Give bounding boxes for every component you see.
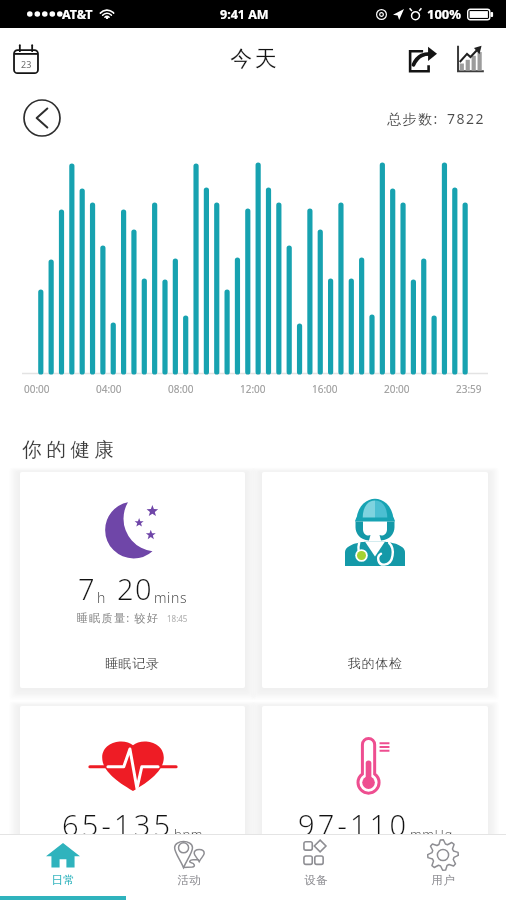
staticText: 97-110 xyxy=(298,805,410,844)
staticText: 23:59 xyxy=(456,382,482,396)
staticText: 睡眠质量: 较好 xyxy=(77,610,160,625)
staticText: 04:00 xyxy=(96,382,122,396)
staticText: 18:45 xyxy=(167,613,188,624)
button[interactable]: 用户 xyxy=(379,834,506,900)
staticText: 65-135 xyxy=(62,805,174,844)
button[interactable]: 设备 xyxy=(252,834,379,900)
staticText: 用户 xyxy=(431,873,455,887)
staticText: 你的健康 xyxy=(20,437,116,462)
staticText: 100% xyxy=(427,5,462,23)
staticText: 00:00 xyxy=(24,382,50,396)
staticText: 我的体检 xyxy=(348,655,403,671)
staticText: 23 xyxy=(21,58,32,70)
staticText: bpm xyxy=(174,825,203,843)
button[interactable]: Calendar xyxy=(4,37,48,81)
staticText: 12:00 xyxy=(240,382,266,396)
staticText: 7 xyxy=(78,569,97,608)
button[interactable]: 我的体检 xyxy=(262,472,488,688)
staticText: 设备 xyxy=(304,873,328,887)
staticText: 20:00 xyxy=(384,382,410,396)
staticText: 日常 xyxy=(51,873,75,887)
button[interactable]: 97-110 xyxy=(262,706,488,900)
staticText: 睡眠记录 xyxy=(105,655,160,671)
staticText: AT&T xyxy=(62,6,93,23)
staticText: 20 xyxy=(117,569,154,608)
button[interactable]: 活动 xyxy=(126,834,252,900)
button[interactable]: Share xyxy=(404,40,442,78)
button[interactable]: 7 xyxy=(20,472,245,688)
staticText: h xyxy=(97,588,106,607)
button[interactable]: 65-135 xyxy=(20,706,245,900)
button[interactable]: 日常 xyxy=(0,834,126,900)
staticText: mins xyxy=(154,588,188,607)
button[interactable]: Back xyxy=(23,99,61,137)
staticText: 08:00 xyxy=(168,382,194,396)
staticText: 活动 xyxy=(177,873,201,887)
button[interactable]: Statistics xyxy=(451,40,489,78)
staticText: mmHg xyxy=(410,825,453,843)
staticText: 总步数: xyxy=(387,109,439,128)
staticText: 7822 xyxy=(447,109,486,128)
staticText: 今天 xyxy=(229,45,278,73)
staticText: 9:41 AM xyxy=(220,6,269,23)
staticText: 16:00 xyxy=(312,382,338,396)
